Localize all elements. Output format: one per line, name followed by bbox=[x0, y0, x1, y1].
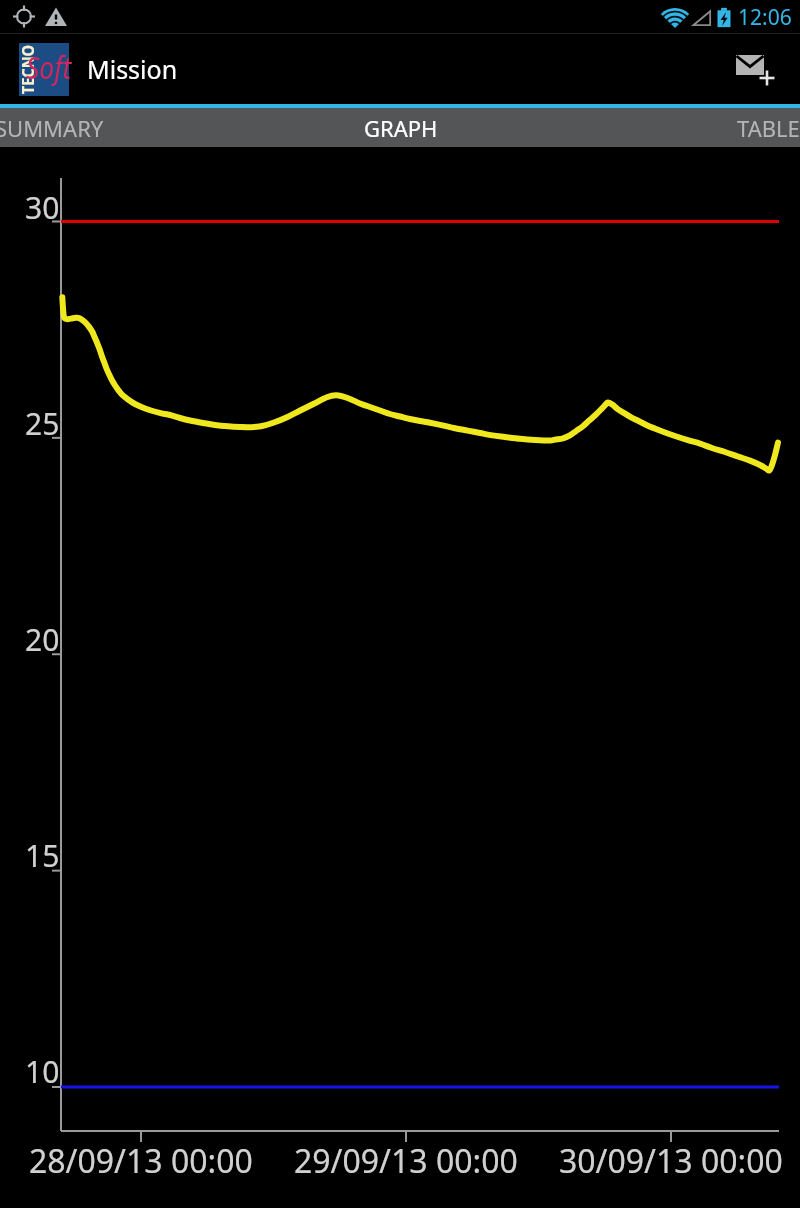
button[interactable]: SUMMARY bbox=[0, 108, 154, 147]
staticText: TABLE bbox=[737, 113, 800, 143]
staticText: Mission bbox=[87, 52, 178, 86]
button[interactable]: GRAPH bbox=[296, 108, 506, 147]
staticText: TECNO bbox=[16, 44, 38, 93]
button[interactable]: TABLE bbox=[663, 108, 800, 147]
staticText: 28/09/13 00:00 bbox=[29, 1139, 253, 1183]
staticText: 30/09/13 00:00 bbox=[559, 1139, 783, 1183]
staticText: 10 bbox=[25, 1051, 60, 1092]
staticText: 12:06 bbox=[738, 3, 792, 32]
staticText: Soft bbox=[26, 47, 72, 88]
staticText: 15 bbox=[25, 835, 60, 876]
staticText: SUMMARY bbox=[0, 113, 104, 143]
staticText: 25 bbox=[25, 403, 60, 444]
button[interactable]: New message bbox=[708, 34, 800, 104]
staticText: 29/09/13 00:00 bbox=[294, 1139, 518, 1183]
staticText: 20 bbox=[25, 619, 60, 660]
staticText: 30 bbox=[25, 187, 60, 228]
staticText: GRAPH bbox=[364, 113, 438, 143]
